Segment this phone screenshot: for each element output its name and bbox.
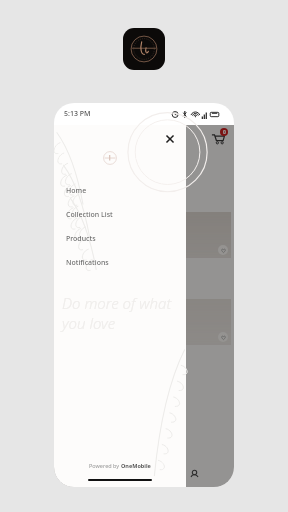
button[interactable]: Search <box>134 464 154 484</box>
staticText: 0 <box>223 129 226 136</box>
staticText: Home <box>66 186 87 196</box>
button[interactable]: Yellow Neck T... <box>57 299 142 368</box>
button[interactable]: Close menu <box>163 132 177 146</box>
staticText: 5:13 PM <box>64 109 91 119</box>
button[interactable]: Home <box>84 464 104 484</box>
staticText: Do more of what you love <box>62 293 186 333</box>
button[interactable]: Products <box>54 227 186 251</box>
staticText: Jewelry <box>132 184 156 193</box>
staticText: Notifications <box>66 258 109 268</box>
button[interactable]: Cart <box>210 130 226 146</box>
button[interactable]: Yellow Neck T... <box>57 212 142 281</box>
button[interactable]: Hand Block... <box>145 299 231 368</box>
button[interactable]: App icon <box>123 28 165 70</box>
staticText: Powered by <box>89 462 121 469</box>
staticText: Yellow Neck T... <box>57 260 78 274</box>
staticText: OneMobile <box>121 462 151 469</box>
button[interactable]: Collection List <box>54 203 186 227</box>
button[interactable]: Hand Block... <box>145 212 231 281</box>
staticText: Collection List <box>66 210 113 220</box>
button[interactable]: Account <box>184 464 204 484</box>
staticText: Products <box>66 234 96 244</box>
button[interactable]: Notifications <box>54 251 186 275</box>
button[interactable]: Home <box>54 179 186 203</box>
